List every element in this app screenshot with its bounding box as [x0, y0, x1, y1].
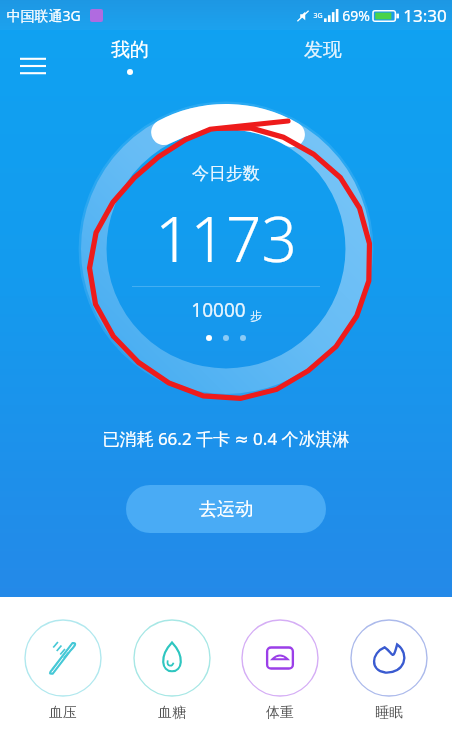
button[interactable]: 发现: [283, 38, 363, 62]
staticText: 10000: [191, 297, 246, 323]
button[interactable]: 睡眠: [343, 619, 435, 740]
button[interactable]: 血糖: [126, 619, 218, 740]
button[interactable]: 体重: [234, 619, 326, 740]
staticText: 血压: [49, 704, 77, 722]
button[interactable]: Menu: [10, 43, 56, 89]
staticText: 今日步数: [192, 163, 260, 184]
staticText: 3G: [313, 11, 323, 21]
staticText: 1173: [155, 196, 297, 280]
button[interactable]: 去运动: [126, 485, 326, 533]
staticText: 13:30: [403, 4, 447, 27]
staticText: 血糖: [158, 704, 186, 722]
button[interactable]: Today steps: [81, 104, 371, 394]
button[interactable]: 我的: [90, 38, 170, 75]
staticText: 睡眠: [375, 704, 403, 722]
staticText: 去运动: [199, 498, 253, 521]
staticText: 体重: [266, 704, 294, 722]
staticText: 发现: [304, 38, 342, 62]
staticText: 已消耗 66.2 千卡 ≈ 0.4 个冰淇淋: [102, 427, 350, 450]
staticText: 中国联通3G: [6, 6, 81, 25]
staticText: 步: [250, 308, 262, 323]
button[interactable]: 血压: [17, 619, 109, 740]
staticText: 我的: [111, 38, 149, 62]
staticText: 69%: [342, 6, 370, 25]
